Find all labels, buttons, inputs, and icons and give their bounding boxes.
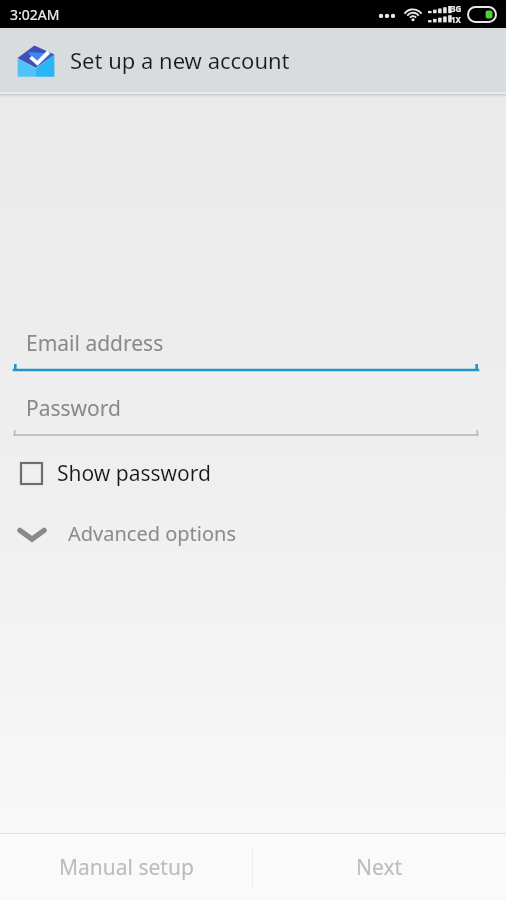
staticText: 1X: [451, 14, 461, 25]
staticText: 3:02AM: [10, 5, 60, 24]
staticText: Email address: [26, 329, 164, 358]
button[interactable]: Email address: [0, 329, 506, 372]
button[interactable]: Expand advanced options: [0, 514, 506, 553]
other: Expand advanced options: [16, 521, 48, 547]
staticText: Manual setup: [59, 853, 194, 882]
staticText: Next: [356, 853, 403, 882]
button[interactable]: Next: [253, 834, 506, 900]
button[interactable]: Show password: [0, 455, 506, 492]
staticText: Show password: [57, 459, 211, 488]
staticText: Password: [26, 394, 121, 423]
button[interactable]: Password: [0, 394, 506, 437]
staticText: Set up a new account: [70, 45, 290, 75]
button[interactable]: Manual setup: [0, 834, 252, 900]
staticText: 3G: [451, 3, 462, 14]
staticText: Advanced options: [68, 520, 237, 547]
